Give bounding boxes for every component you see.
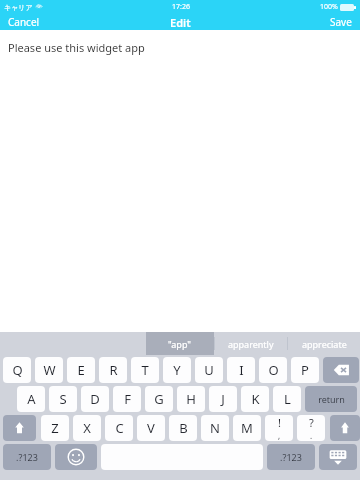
button[interactable]: S xyxy=(49,386,77,412)
button[interactable]: .?123 xyxy=(3,444,51,470)
staticText: Z xyxy=(51,419,59,437)
button[interactable]: ! xyxy=(265,415,293,441)
button[interactable]: H xyxy=(177,386,205,412)
button[interactable]: return xyxy=(305,386,357,412)
button[interactable]: Save xyxy=(330,14,352,30)
staticText: apparently xyxy=(228,338,274,350)
staticText: B xyxy=(179,419,188,437)
staticText: O xyxy=(268,361,279,379)
button[interactable]: Backspace xyxy=(323,357,359,383)
staticText: . xyxy=(310,430,313,441)
button[interactable]: Shift xyxy=(3,415,36,441)
button[interactable]: J xyxy=(209,386,237,412)
button[interactable]: V xyxy=(137,415,165,441)
staticText: P xyxy=(301,361,309,379)
staticText: return xyxy=(318,393,345,405)
staticText: 17:26 xyxy=(172,2,190,12)
button[interactable]: U xyxy=(195,357,223,383)
staticText: V xyxy=(147,419,155,437)
button[interactable]: Shift xyxy=(330,415,360,441)
button[interactable]: D xyxy=(81,386,109,412)
staticText: C xyxy=(115,419,124,437)
button[interactable]: T xyxy=(131,357,159,383)
button[interactable]: F xyxy=(113,386,141,412)
button[interactable]: N xyxy=(201,415,229,441)
button[interactable]: apparently xyxy=(215,332,287,355)
staticText: Y xyxy=(173,361,181,379)
button[interactable]: Hide keyboard xyxy=(319,444,357,470)
staticText: F xyxy=(124,390,131,408)
staticText: Please use this widget app xyxy=(8,40,145,55)
staticText: appreciate xyxy=(302,338,347,350)
button[interactable]: M xyxy=(233,415,261,441)
staticText: ! xyxy=(278,415,281,430)
staticText: Save xyxy=(330,15,352,29)
staticText: I xyxy=(239,361,244,379)
staticText: ? xyxy=(309,415,314,430)
button[interactable]: G xyxy=(145,386,173,412)
button[interactable]: .?123 xyxy=(267,444,315,470)
staticText: U xyxy=(204,361,214,379)
button[interactable]: "app" xyxy=(146,332,214,355)
button[interactable]: Y xyxy=(163,357,191,383)
button[interactable]: L xyxy=(273,386,301,412)
button[interactable]: K xyxy=(241,386,269,412)
staticText: .?123 xyxy=(280,451,302,463)
staticText: キャリア xyxy=(4,3,33,12)
staticText: J xyxy=(221,390,225,408)
button[interactable]: P xyxy=(291,357,319,383)
button[interactable]: O xyxy=(259,357,287,383)
staticText: S xyxy=(59,390,67,408)
staticText: T xyxy=(141,361,149,379)
button[interactable]: I xyxy=(227,357,255,383)
button[interactable]: R xyxy=(99,357,127,383)
button[interactable]: ? xyxy=(297,415,325,441)
button[interactable]: Q xyxy=(3,357,31,383)
staticText: A xyxy=(27,390,36,408)
staticText: L xyxy=(284,390,291,408)
staticText: Cancel xyxy=(8,15,40,29)
button[interactable]: appreciate xyxy=(288,332,360,355)
staticText: Q xyxy=(12,361,23,379)
button[interactable]: E xyxy=(67,357,95,383)
staticText: D xyxy=(90,390,100,408)
staticText: .?123 xyxy=(16,451,38,463)
staticText: 100% xyxy=(320,2,338,12)
staticText: "app" xyxy=(168,338,192,350)
button[interactable]: Z xyxy=(41,415,69,441)
staticText: G xyxy=(154,390,164,408)
staticText: X xyxy=(83,419,91,437)
staticText: E xyxy=(77,361,85,379)
staticText: N xyxy=(210,419,220,437)
staticText: , xyxy=(278,430,281,441)
button[interactable]: X xyxy=(73,415,101,441)
staticText: M xyxy=(241,419,253,437)
button[interactable]: C xyxy=(105,415,133,441)
staticText: Edit xyxy=(170,15,191,30)
button[interactable]: W xyxy=(35,357,63,383)
button[interactable]: Cancel xyxy=(8,14,40,30)
button[interactable]: B xyxy=(169,415,197,441)
staticText: R xyxy=(109,361,118,379)
staticText: K xyxy=(251,390,260,408)
staticText: H xyxy=(186,390,196,408)
staticText: W xyxy=(43,361,56,379)
button[interactable]: Emoji xyxy=(55,444,97,470)
button[interactable]: A xyxy=(17,386,45,412)
